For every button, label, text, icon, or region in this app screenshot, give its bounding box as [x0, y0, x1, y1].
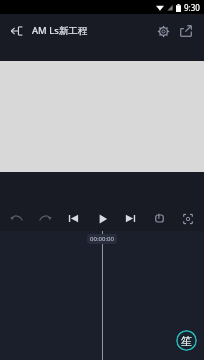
button[interactable]: Back	[7, 21, 27, 41]
button[interactable]: Redo	[34, 207, 57, 230]
button[interactable]: Play	[91, 207, 114, 230]
staticText: 9:30	[184, 2, 200, 13]
button[interactable]: Skip to start	[62, 207, 85, 230]
button[interactable]: Settings	[152, 20, 174, 42]
button[interactable]: Brand badge	[176, 330, 197, 351]
button[interactable]: Export	[175, 20, 197, 42]
staticText: 00:00:00	[90, 235, 114, 243]
button[interactable]: Skip to end	[119, 207, 142, 230]
staticText: AM Ls新工程	[32, 24, 88, 37]
button[interactable]: Undo	[5, 207, 28, 230]
button[interactable]: Loop	[148, 207, 171, 230]
staticText: 笙	[181, 334, 192, 348]
button[interactable]: Fit to screen	[176, 207, 199, 230]
